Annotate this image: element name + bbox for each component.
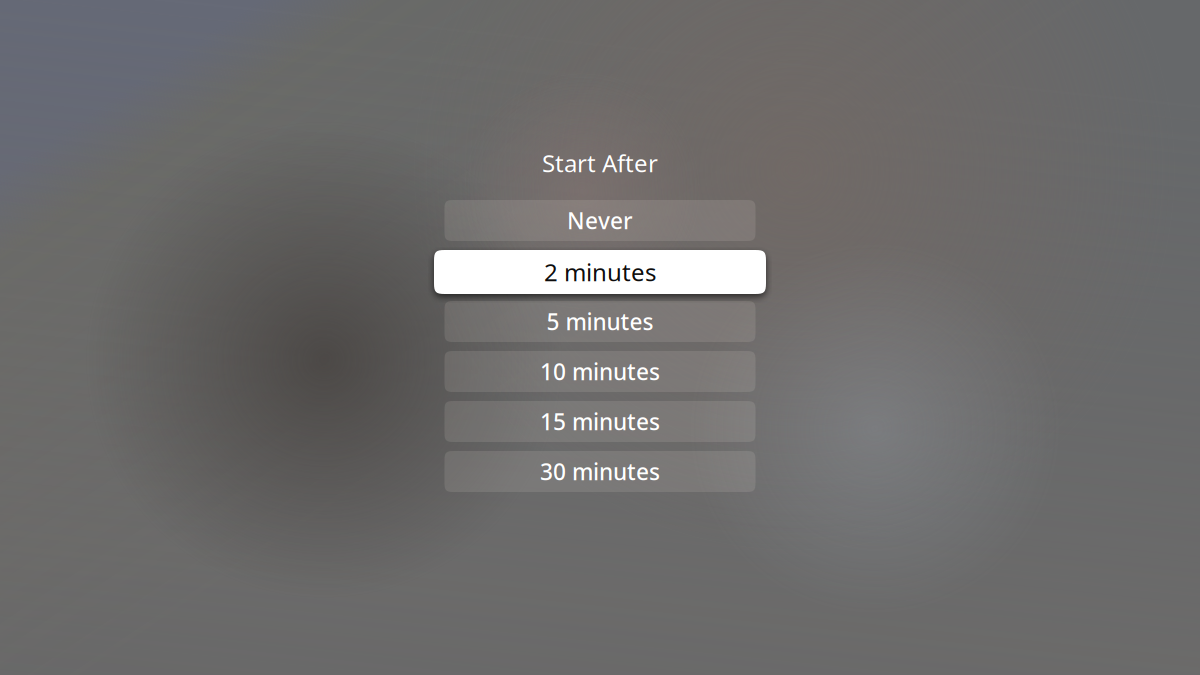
button[interactable]: 2 minutes — [434, 250, 766, 294]
staticText: 2 minutes — [544, 256, 656, 288]
button[interactable]: 30 minutes — [444, 451, 755, 492]
staticText: 5 minutes — [546, 306, 653, 336]
button[interactable]: Never — [444, 200, 755, 241]
button[interactable]: 10 minutes — [444, 351, 755, 392]
staticText: Never — [567, 205, 633, 235]
staticText: 15 minutes — [540, 406, 660, 436]
staticText: 30 minutes — [540, 456, 660, 486]
button[interactable]: 15 minutes — [444, 401, 755, 442]
button[interactable]: 5 minutes — [444, 301, 755, 342]
staticText: Start After — [542, 147, 658, 179]
staticText: 10 minutes — [540, 356, 660, 386]
